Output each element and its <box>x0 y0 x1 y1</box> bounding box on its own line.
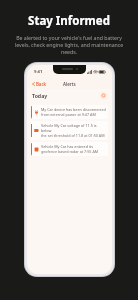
staticText: Be alerted to your vehicle's fuel and ba… <box>9 34 129 55</box>
staticText: Vehicle My Car has entered its <box>41 144 93 149</box>
staticText: Today <box>32 92 48 99</box>
staticText: from external power at 9:47 AM <box>41 112 96 117</box>
staticText: Back <box>36 81 46 87</box>
button[interactable]: Filter <box>100 92 107 99</box>
staticText: geofence based radar at 7:55 AM <box>41 149 99 154</box>
staticText: the set threshold of 11.8 at 01:50 AM <box>41 133 105 138</box>
staticText: Alerts <box>63 81 76 87</box>
button[interactable]: Vehicle My Car voltage of 11.5 is below <box>31 121 108 140</box>
staticText: Vehicle My Car voltage of 11.5 is below <box>41 123 106 133</box>
button[interactable]: Back <box>31 80 47 88</box>
button[interactable]: My Car device has been disconnected <box>31 105 108 119</box>
staticText: My Car device has been disconnected <box>41 107 106 112</box>
staticText: Stay Informed <box>28 13 110 29</box>
staticText: 9:41 <box>34 69 43 75</box>
button[interactable]: Vehicle My Car has entered its <box>31 142 108 156</box>
